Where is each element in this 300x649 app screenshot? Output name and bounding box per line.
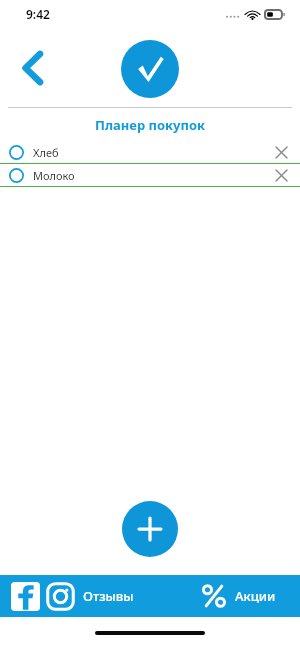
staticText: 9:42 (26, 6, 50, 22)
staticText: Молоко (33, 168, 75, 183)
button[interactable]: App logo (121, 40, 179, 98)
staticText: Отзывы (83, 587, 134, 605)
button[interactable]: Хлеб (0, 141, 300, 163)
button[interactable]: Акции (201, 583, 300, 609)
button[interactable]: Remove Хлеб (268, 141, 294, 163)
button[interactable]: Add item (122, 501, 178, 557)
staticText: Акции (235, 587, 276, 605)
button[interactable]: Back (10, 45, 56, 91)
button[interactable]: Remove Молоко (268, 164, 294, 186)
button[interactable]: Facebook (9, 580, 41, 612)
button[interactable]: Instagram (44, 580, 76, 612)
staticText: Планер покупок (95, 116, 205, 134)
staticText: Хлеб (33, 145, 59, 160)
button[interactable]: Молоко (0, 164, 300, 186)
button[interactable]: Отзывы (83, 587, 134, 605)
